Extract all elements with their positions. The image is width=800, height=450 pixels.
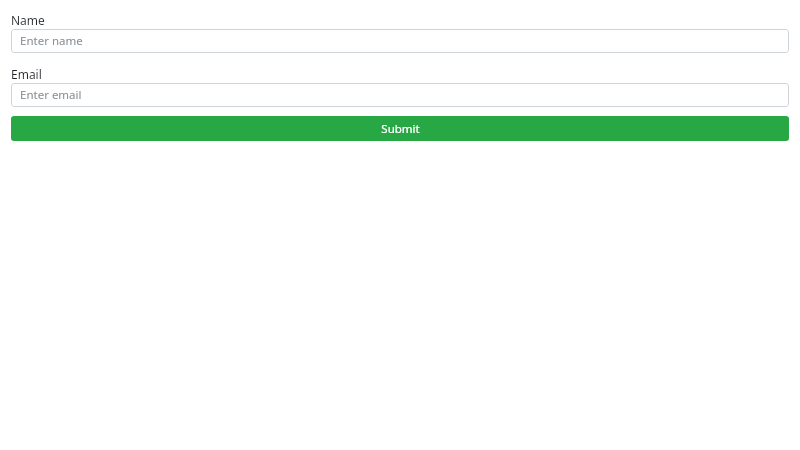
staticText: Enter name bbox=[20, 33, 83, 49]
staticText: Submit bbox=[381, 121, 420, 137]
staticText: Email bbox=[11, 66, 42, 82]
button[interactable]: Name input field bbox=[11, 29, 789, 53]
staticText: Name bbox=[11, 12, 45, 28]
staticText: Enter email bbox=[20, 87, 82, 103]
button[interactable]: Email input field bbox=[11, 83, 789, 107]
button[interactable]: Submit bbox=[11, 116, 789, 141]
